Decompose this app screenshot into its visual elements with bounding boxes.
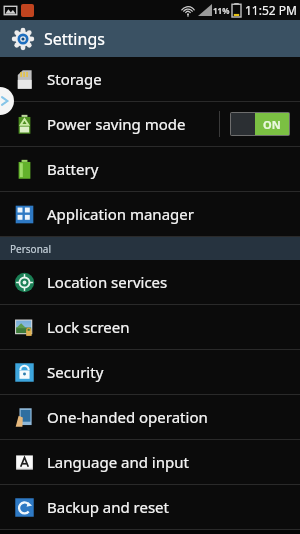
- button[interactable]: Open panel: [0, 87, 14, 115]
- staticText: One-handed operation: [47, 407, 208, 427]
- button[interactable]: Battery: [0, 147, 300, 191]
- staticText: Location services: [47, 272, 168, 292]
- button[interactable]: Backup and reset: [0, 485, 300, 529]
- staticText: Security: [47, 362, 104, 382]
- staticText: ON: [263, 117, 281, 132]
- button[interactable]: One-handed operation: [0, 395, 300, 439]
- button[interactable]: Application manager: [0, 192, 300, 236]
- button[interactable]: Location services: [0, 260, 300, 304]
- button[interactable]: Security: [0, 350, 300, 394]
- staticText: Backup and reset: [47, 497, 169, 517]
- staticText: Power saving mode: [47, 114, 186, 134]
- staticText: Battery: [47, 159, 99, 179]
- staticText: 11:52 PM: [245, 2, 297, 18]
- staticText: Lock screen: [47, 317, 130, 337]
- staticText: Storage: [47, 69, 102, 89]
- button[interactable]: Language and input: [0, 440, 300, 484]
- staticText: Language and input: [47, 452, 189, 472]
- button[interactable]: Lock screen: [0, 305, 300, 349]
- staticText: Application manager: [47, 204, 194, 224]
- staticText: Settings: [44, 28, 105, 50]
- button[interactable]: Power saving mode: [0, 102, 300, 146]
- staticText: 11%: [213, 5, 230, 16]
- staticText: Personal: [10, 242, 52, 256]
- button[interactable]: Storage: [0, 57, 300, 101]
- button[interactable]: Power saving mode toggle, on: [231, 113, 289, 135]
- button[interactable]: Settings: [0, 20, 300, 57]
